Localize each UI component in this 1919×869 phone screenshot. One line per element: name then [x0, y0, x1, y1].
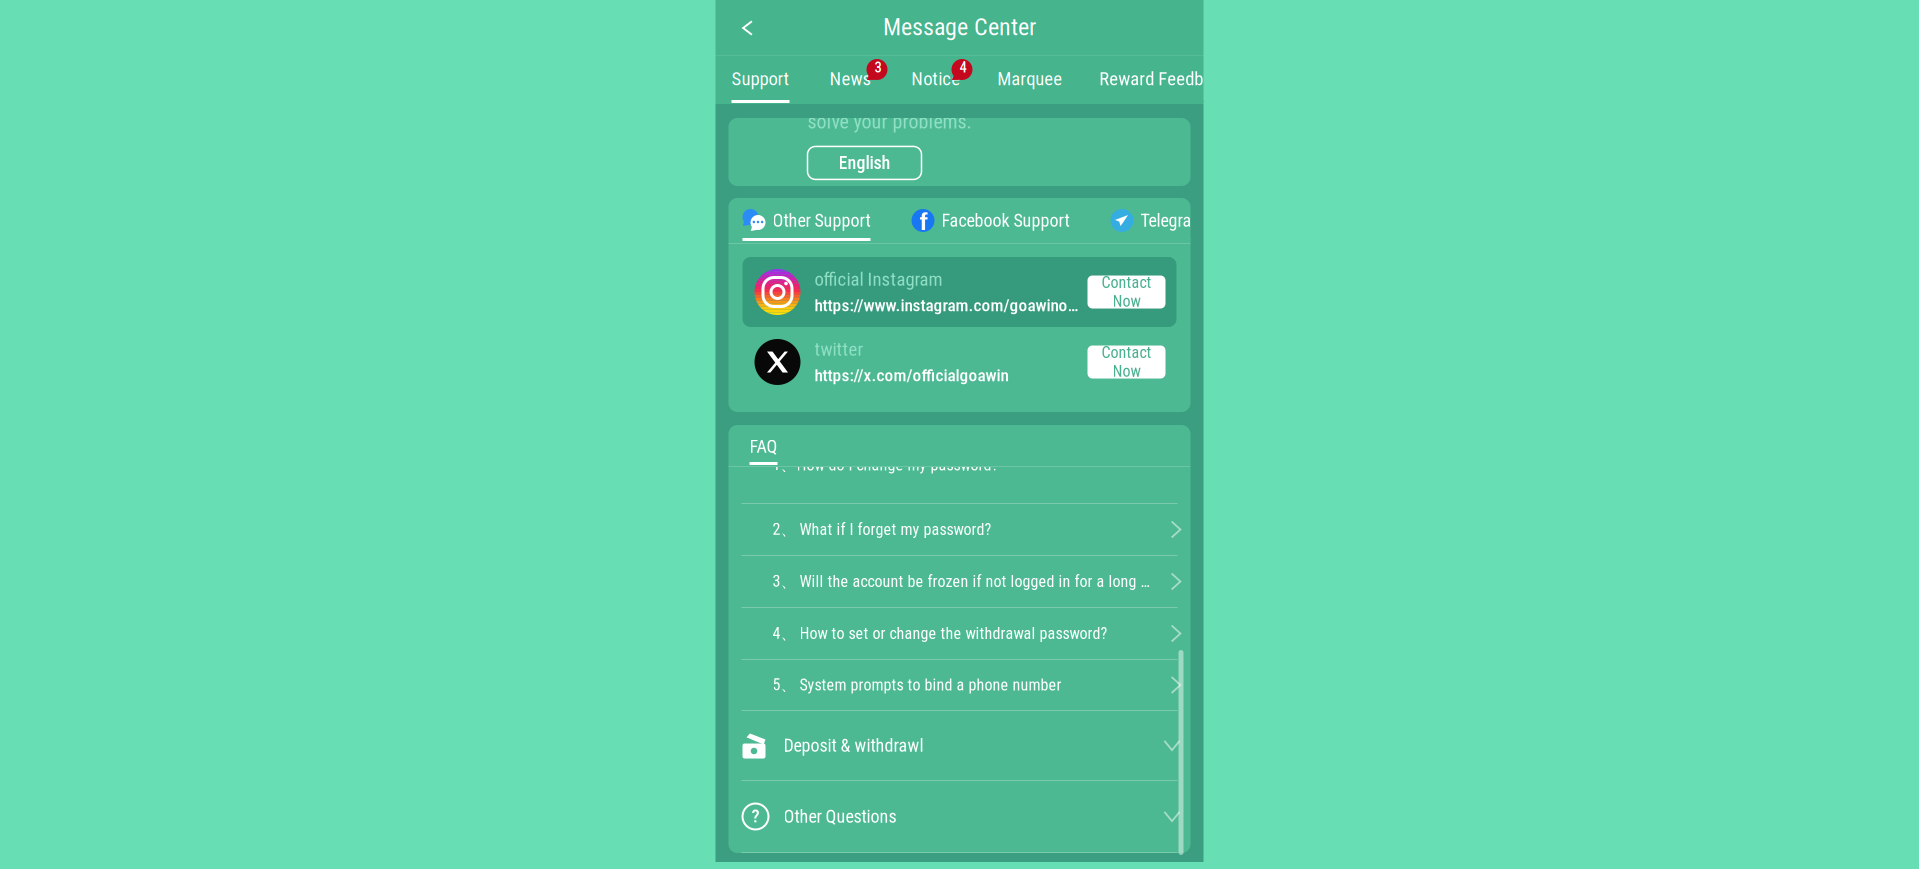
button[interactable]: ? — [728, 781, 1190, 853]
button[interactable]: News — [826, 56, 874, 104]
button[interactable]: English — [807, 146, 921, 179]
staticText: https://x.com/officialgoawin — [814, 365, 1008, 386]
staticText: FAQ — [749, 436, 777, 457]
staticText: Now — [1112, 292, 1140, 311]
staticText: Telegram Support — [1140, 210, 1265, 231]
staticText: Now — [1112, 362, 1140, 381]
button[interactable]: 2、 — [728, 504, 1190, 556]
staticText: 3、 — [772, 571, 796, 592]
button[interactable]: Reward Feedback — [1099, 56, 1229, 104]
staticText: https://www.instagram.com/goawinof… — [814, 295, 1083, 316]
staticText: 1、How do I change my password? — [772, 455, 998, 475]
button[interactable]: f — [911, 198, 1069, 243]
staticText: Will the account be frozen if not logged… — [799, 572, 1149, 591]
button[interactable]: Notice — [911, 56, 960, 104]
staticText: official Instagram — [814, 268, 942, 290]
staticText: Other Support — [772, 210, 870, 231]
staticText: Message Center — [883, 13, 1036, 41]
button[interactable]: Back — [725, 8, 769, 48]
button[interactable]: Marquee — [997, 56, 1062, 104]
staticText: 2、 — [772, 519, 796, 540]
staticText: twitter — [814, 338, 863, 360]
button[interactable]: Support — [731, 56, 789, 104]
staticText: How to set or change the withdrawal pass… — [799, 624, 1107, 643]
button[interactable]: 4、 — [728, 608, 1190, 660]
button[interactable]: Other Support — [742, 198, 870, 243]
staticText: Contact — [1101, 273, 1151, 292]
staticText: solve your problems. — [807, 110, 971, 133]
staticText: News — [829, 68, 871, 90]
button[interactable]: Contact — [1087, 275, 1165, 308]
staticText: Other Questions — [783, 806, 896, 827]
staticText: Support — [731, 68, 789, 90]
button[interactable]: Contact — [1087, 345, 1165, 378]
staticText: 4、 — [772, 623, 796, 644]
staticText: 3 — [874, 59, 881, 76]
staticText: ? — [751, 805, 759, 827]
staticText: f — [919, 209, 927, 235]
button[interactable]: Deposit & withdrawl — [728, 711, 1190, 781]
staticText: Notice — [911, 68, 960, 90]
staticText: English — [838, 152, 890, 173]
staticText: 4 — [959, 59, 966, 76]
staticText: What if I forget my password? — [799, 520, 991, 539]
button[interactable]: 3、 — [728, 556, 1190, 608]
button[interactable]: FAQ — [749, 425, 777, 466]
staticText: Reward Feedback — [1099, 68, 1229, 90]
staticText: Marquee — [997, 68, 1062, 90]
button[interactable]: twitter — [742, 327, 1176, 397]
staticText: Contact — [1101, 343, 1151, 362]
staticText: Deposit & withdrawl — [783, 735, 923, 756]
button[interactable]: Telegram Support — [1110, 198, 1265, 243]
staticText: System prompts to bind a phone number — [799, 676, 1061, 694]
staticText: Facebook Support — [941, 210, 1069, 231]
staticText: 5、 — [772, 675, 796, 695]
button[interactable]: 5、 — [728, 660, 1190, 711]
button[interactable]: official Instagram — [742, 257, 1176, 327]
